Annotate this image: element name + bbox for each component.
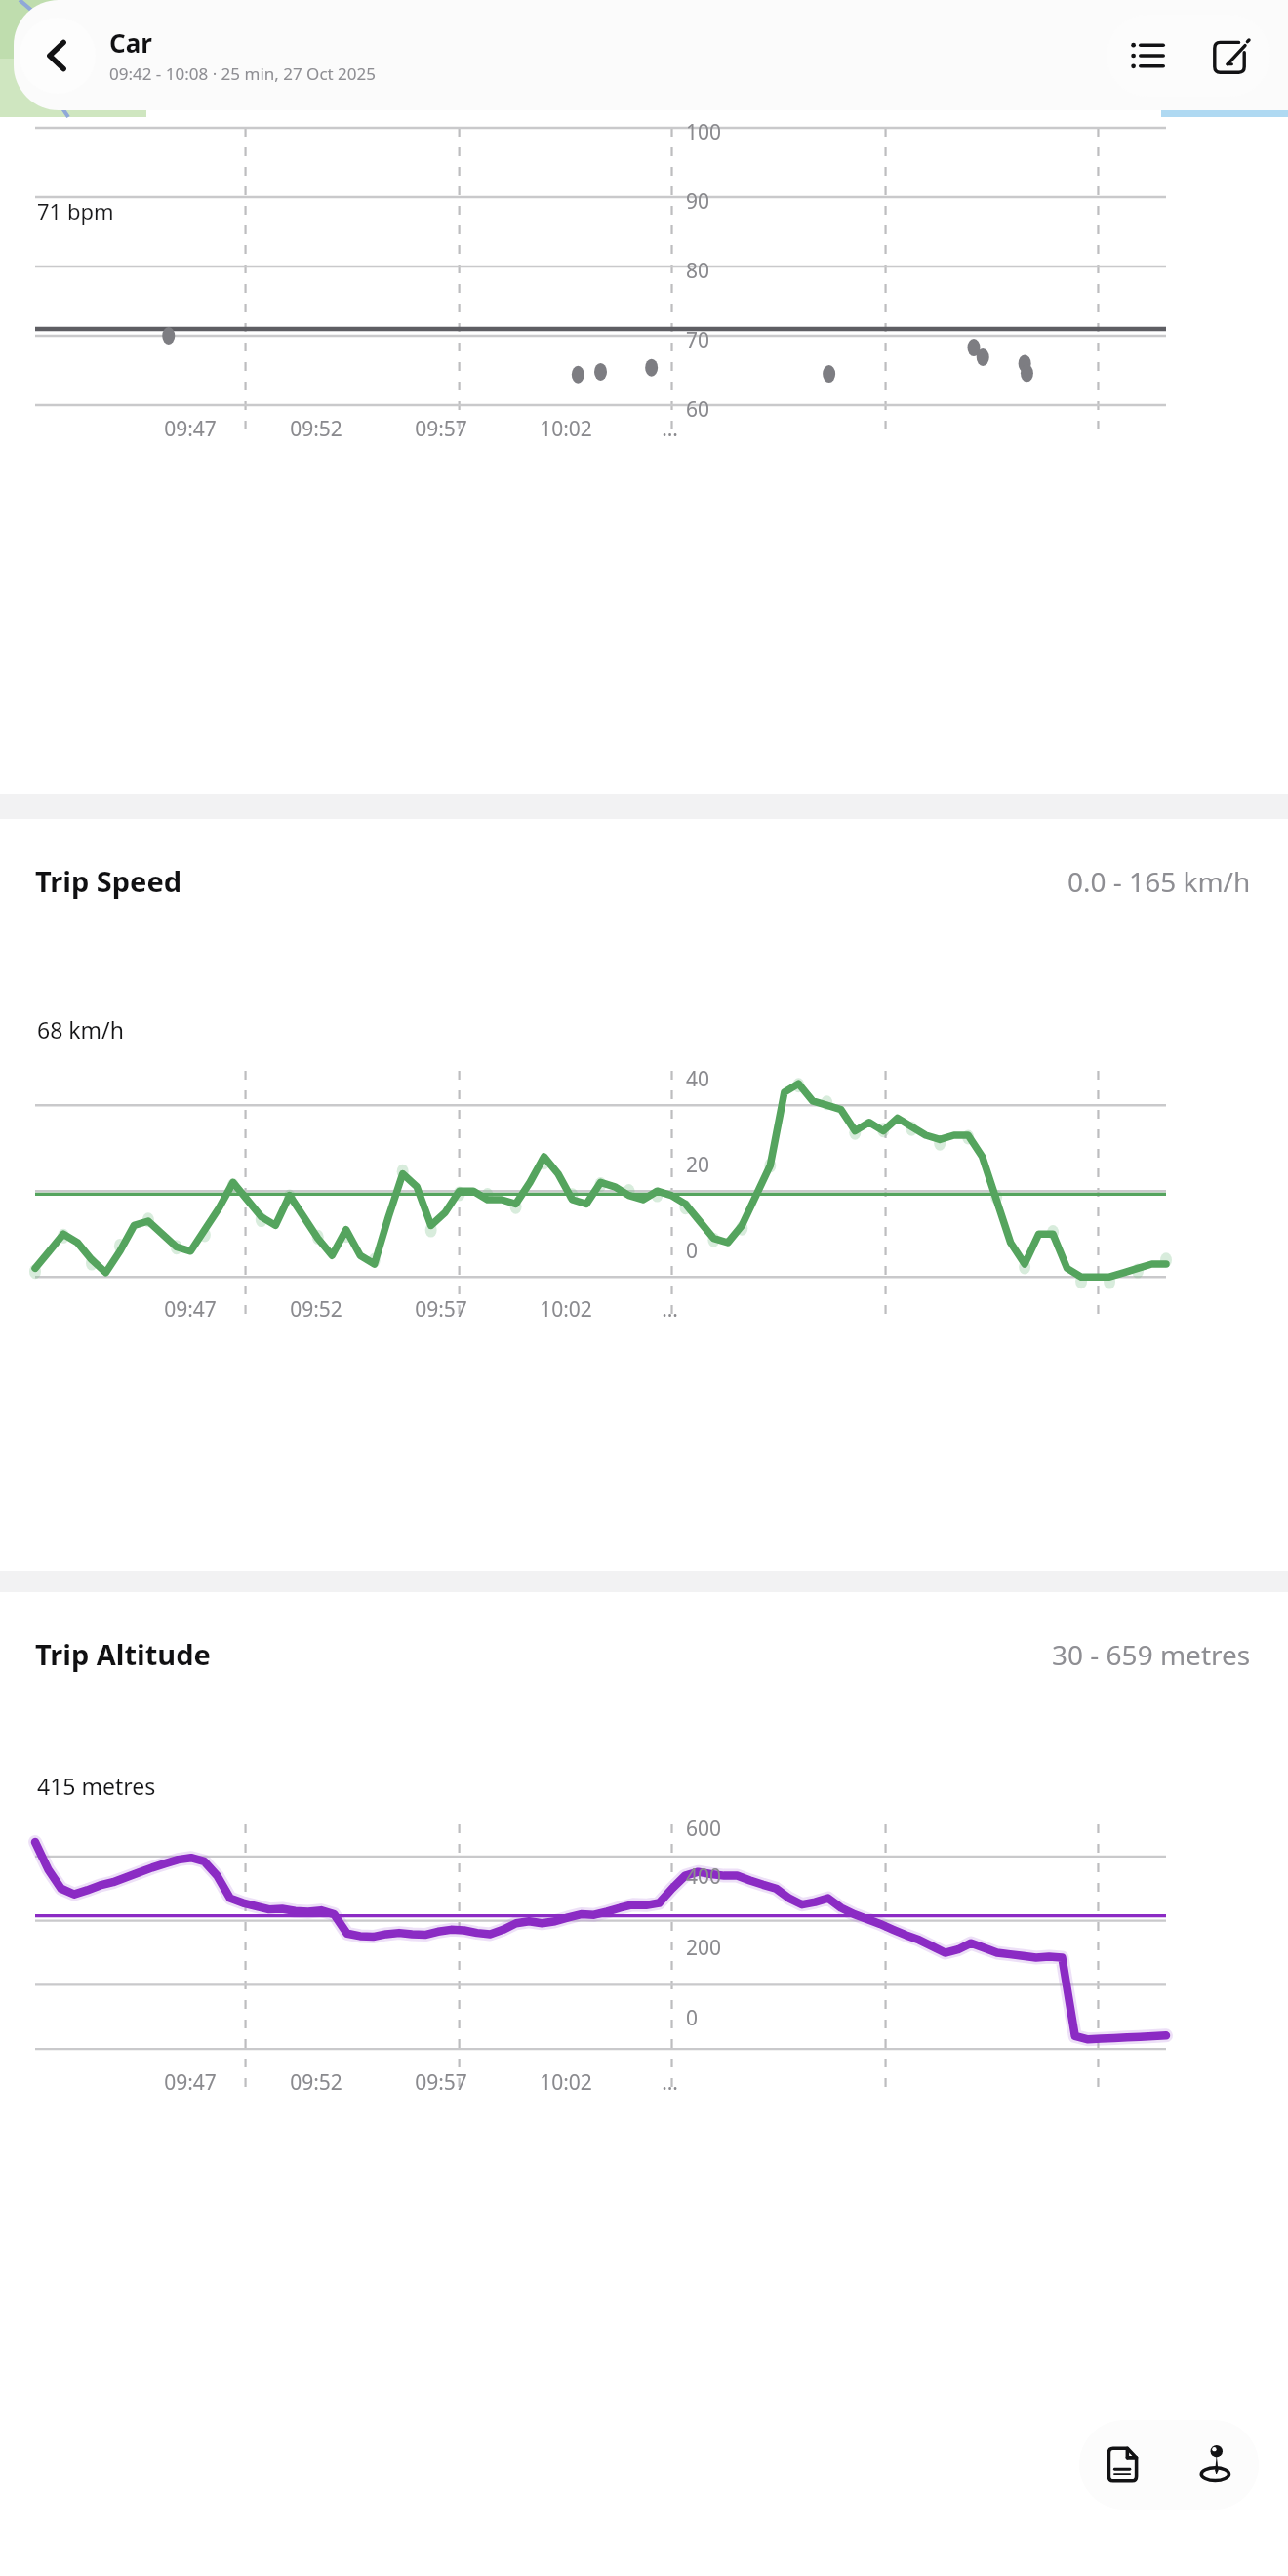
staticText: 09:47 [164, 2068, 217, 2097]
staticText: 415 metres [37, 1771, 156, 1801]
staticText: 40 [686, 1065, 710, 1093]
staticText: 400 [686, 1862, 722, 1891]
button[interactable]: Edit [1188, 15, 1270, 97]
staticText: Car [109, 25, 152, 60]
staticText: 09:52 [290, 415, 342, 443]
staticText: 20 [686, 1151, 710, 1179]
staticText: Trip Altitude [35, 1635, 211, 1673]
staticText: 200 [686, 1934, 722, 1962]
staticText: … [662, 415, 678, 443]
staticText: … [662, 2068, 678, 2097]
staticText: 0.0 - 165 km/h [1067, 863, 1251, 900]
button[interactable]: List [1107, 15, 1188, 97]
staticText: 80 [686, 257, 710, 285]
staticText: 68 km/h [37, 1014, 124, 1044]
staticText: 09:47 [164, 1295, 217, 1324]
staticText: 71 bpm [37, 196, 114, 225]
staticText: 60 [686, 395, 710, 424]
staticText: 0 [686, 2004, 699, 2032]
staticText: 10:02 [540, 1295, 592, 1324]
staticText: 09:52 [290, 1295, 342, 1324]
staticText: 09:47 [164, 415, 217, 443]
staticText: Trip Speed [35, 862, 182, 900]
staticText: 600 [686, 1815, 722, 1843]
button[interactable]: Back [20, 18, 96, 94]
staticText: 30 - 659 metres [1052, 1636, 1251, 1673]
button[interactable]: Notes [1079, 2420, 1169, 2510]
staticText: 09:57 [415, 1295, 467, 1324]
staticText: … [662, 1295, 678, 1324]
staticText: 0 [686, 1237, 699, 1265]
staticText: 10:02 [540, 415, 592, 443]
staticText: 70 [686, 326, 710, 354]
staticText: 09:57 [415, 415, 467, 443]
staticText: 10:02 [540, 2068, 592, 2097]
staticText: 09:57 [415, 2068, 467, 2097]
staticText: 09:52 [290, 2068, 342, 2097]
staticText: 90 [686, 187, 710, 216]
staticText: 09:42 - 10:08 · 25 min, 27 Oct 2025 [109, 62, 377, 85]
button[interactable]: Show on map [1169, 2420, 1259, 2510]
staticText: 100 [686, 118, 722, 146]
